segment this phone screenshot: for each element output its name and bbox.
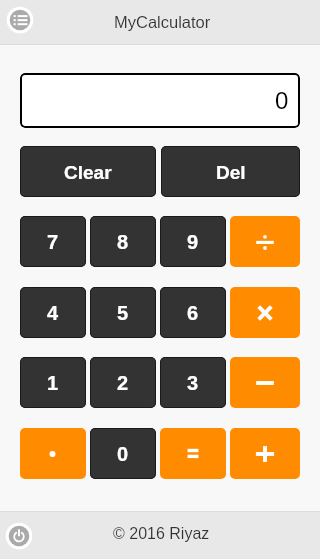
button[interactable]: Decimal point <box>20 428 86 479</box>
button[interactable]: 6 <box>160 287 226 338</box>
staticText: 6 <box>187 302 199 324</box>
staticText: 0 <box>117 443 129 465</box>
staticText: MyCalculator <box>114 13 211 31</box>
button[interactable]: Divide <box>230 216 300 267</box>
button[interactable]: 9 <box>160 216 226 267</box>
button[interactable]: Clear <box>20 146 156 197</box>
staticText: Clear <box>64 162 112 183</box>
button[interactable]: Equals <box>160 428 226 479</box>
staticText: Del <box>216 162 246 183</box>
staticText: 0 <box>275 87 289 114</box>
button[interactable]: 2 <box>90 357 156 408</box>
staticText: 2 <box>117 372 129 394</box>
staticText: 4 <box>47 302 59 324</box>
button[interactable]: Del <box>161 146 300 197</box>
button[interactable]: Multiply <box>230 287 300 338</box>
staticText: © 2016 Riyaz <box>113 525 210 543</box>
button[interactable]: 4 <box>20 287 86 338</box>
staticText: 1 <box>47 372 59 394</box>
button[interactable]: 7 <box>20 216 86 267</box>
button[interactable]: 1 <box>20 357 86 408</box>
button[interactable]: 5 <box>90 287 156 338</box>
button[interactable]: 3 <box>160 357 226 408</box>
button[interactable]: 8 <box>90 216 156 267</box>
button[interactable]: Add <box>230 428 300 479</box>
staticText: 5 <box>117 302 129 324</box>
staticText: 7 <box>47 231 59 253</box>
staticText: 8 <box>117 231 129 253</box>
staticText: 9 <box>187 231 199 253</box>
button[interactable]: Subtract <box>230 357 300 408</box>
button[interactable]: 0 <box>90 428 156 479</box>
staticText: 3 <box>187 372 199 394</box>
button[interactable]: Menu <box>6 6 34 34</box>
button[interactable]: Power <box>5 522 33 550</box>
